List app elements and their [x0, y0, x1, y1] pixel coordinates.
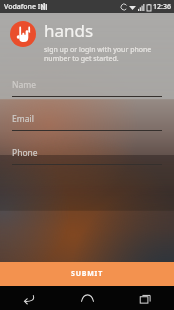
button[interactable]: Home	[58, 286, 116, 310]
staticText: Email	[12, 113, 34, 125]
button[interactable]: Email	[12, 113, 162, 147]
button[interactable]: Phone	[12, 147, 162, 181]
other: Hands logo	[16, 27, 31, 42]
staticText: Vodafone IN	[4, 2, 46, 12]
button[interactable]: Back	[0, 286, 58, 310]
staticText: Phone	[12, 147, 38, 159]
button[interactable]: Name	[12, 79, 162, 113]
button[interactable]: Recent apps	[116, 286, 174, 310]
staticText: hands	[44, 19, 94, 42]
staticText: SUBMIT	[71, 269, 103, 279]
staticText: Name	[12, 79, 36, 91]
button[interactable]: SUBMIT	[0, 262, 174, 286]
staticText: 12:36	[153, 2, 171, 12]
staticText: sign up or login with your phone number …	[44, 45, 152, 63]
